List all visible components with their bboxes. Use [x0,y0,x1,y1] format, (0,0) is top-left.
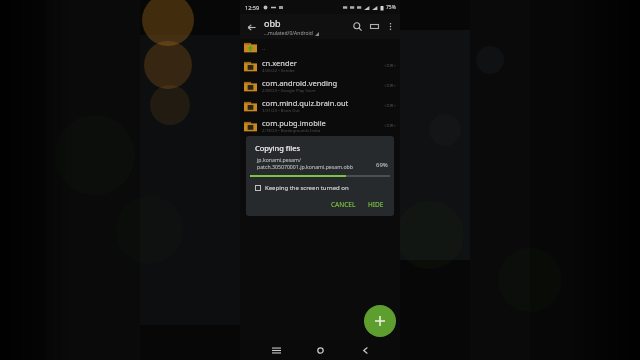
staticText: 2/18/23 • Battlegrounds India [262,128,320,134]
button[interactable]: Back [243,19,259,35]
button[interactable]: Add [364,305,396,337]
staticText: HIDE [368,200,384,209]
button[interactable]: View mode [366,18,383,35]
staticText: 75% [386,4,396,11]
button[interactable]: com.android.vending [240,76,400,96]
staticText: patch.305070001.jp.konami.pesam.obb [257,163,353,170]
staticText: …mulated/0/Android [264,30,313,37]
button[interactable]: Recent apps [267,341,285,359]
staticText: <DIR> [384,83,396,89]
staticText: Keeping the screen turned on [265,184,349,192]
button[interactable]: HIDE [364,198,388,211]
staticText: com.android.vending [262,78,338,88]
button[interactable]: Home [311,341,329,359]
staticText: Copying files [255,143,300,153]
staticText: obb [264,17,281,29]
staticText: 3/31/23 • Brain Out [262,108,300,114]
staticText: <DIR> [384,103,396,109]
staticText: com.pubg.imobile [262,118,326,128]
staticText: jp.konami.pesam/ [257,156,301,163]
staticText: <DIR> [384,63,396,69]
staticText: 2/08/23 • Google Play Store [262,88,316,94]
button[interactable]: com.pubg.imobile [240,116,400,136]
button[interactable]: Search [349,18,366,35]
button[interactable]: com.mind.quiz.brain.out [240,96,400,116]
staticText: 12:59 [245,4,260,11]
staticText: .. [262,44,266,52]
button[interactable]: Back [356,341,374,359]
button[interactable]: .. [240,39,400,56]
button[interactable]: cn.xender [240,56,400,76]
button[interactable]: Keeping the screen turned on [246,184,394,192]
staticText: cn.xender [262,58,297,68]
staticText: <DIR> [384,123,396,129]
staticText: 4/26/22 • Xender [262,68,295,74]
staticText: 69% [376,161,388,169]
staticText: CANCEL [331,200,356,209]
button[interactable]: More options [383,19,398,34]
button[interactable]: CANCEL [327,198,360,211]
staticText: com.mind.quiz.brain.out [262,98,349,108]
